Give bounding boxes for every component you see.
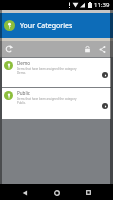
- button[interactable]: Lock: [81, 43, 93, 55]
- staticText: Public: [17, 90, 31, 96]
- button[interactable]: Open Public: [102, 103, 108, 109]
- staticText: 11:39: [94, 1, 110, 9]
- staticText: Demo: [17, 60, 31, 66]
- button[interactable]: Share: [96, 43, 108, 55]
- staticText: Items that have been assigned the catego…: [17, 67, 77, 75]
- button[interactable]: Open navigation menu: [4, 20, 15, 31]
- button[interactable]: Demo: [2, 58, 111, 87]
- button[interactable]: Open Demo: [102, 72, 108, 78]
- button[interactable]: Back: [18, 186, 31, 199]
- button[interactable]: Public: [2, 88, 111, 119]
- button[interactable]: Refresh: [3, 43, 15, 55]
- button[interactable]: Recent apps: [82, 186, 95, 199]
- button[interactable]: Home: [50, 186, 63, 199]
- staticText: Items that have been assigned the catego…: [17, 97, 77, 105]
- staticText: Your Categories: [20, 21, 73, 31]
